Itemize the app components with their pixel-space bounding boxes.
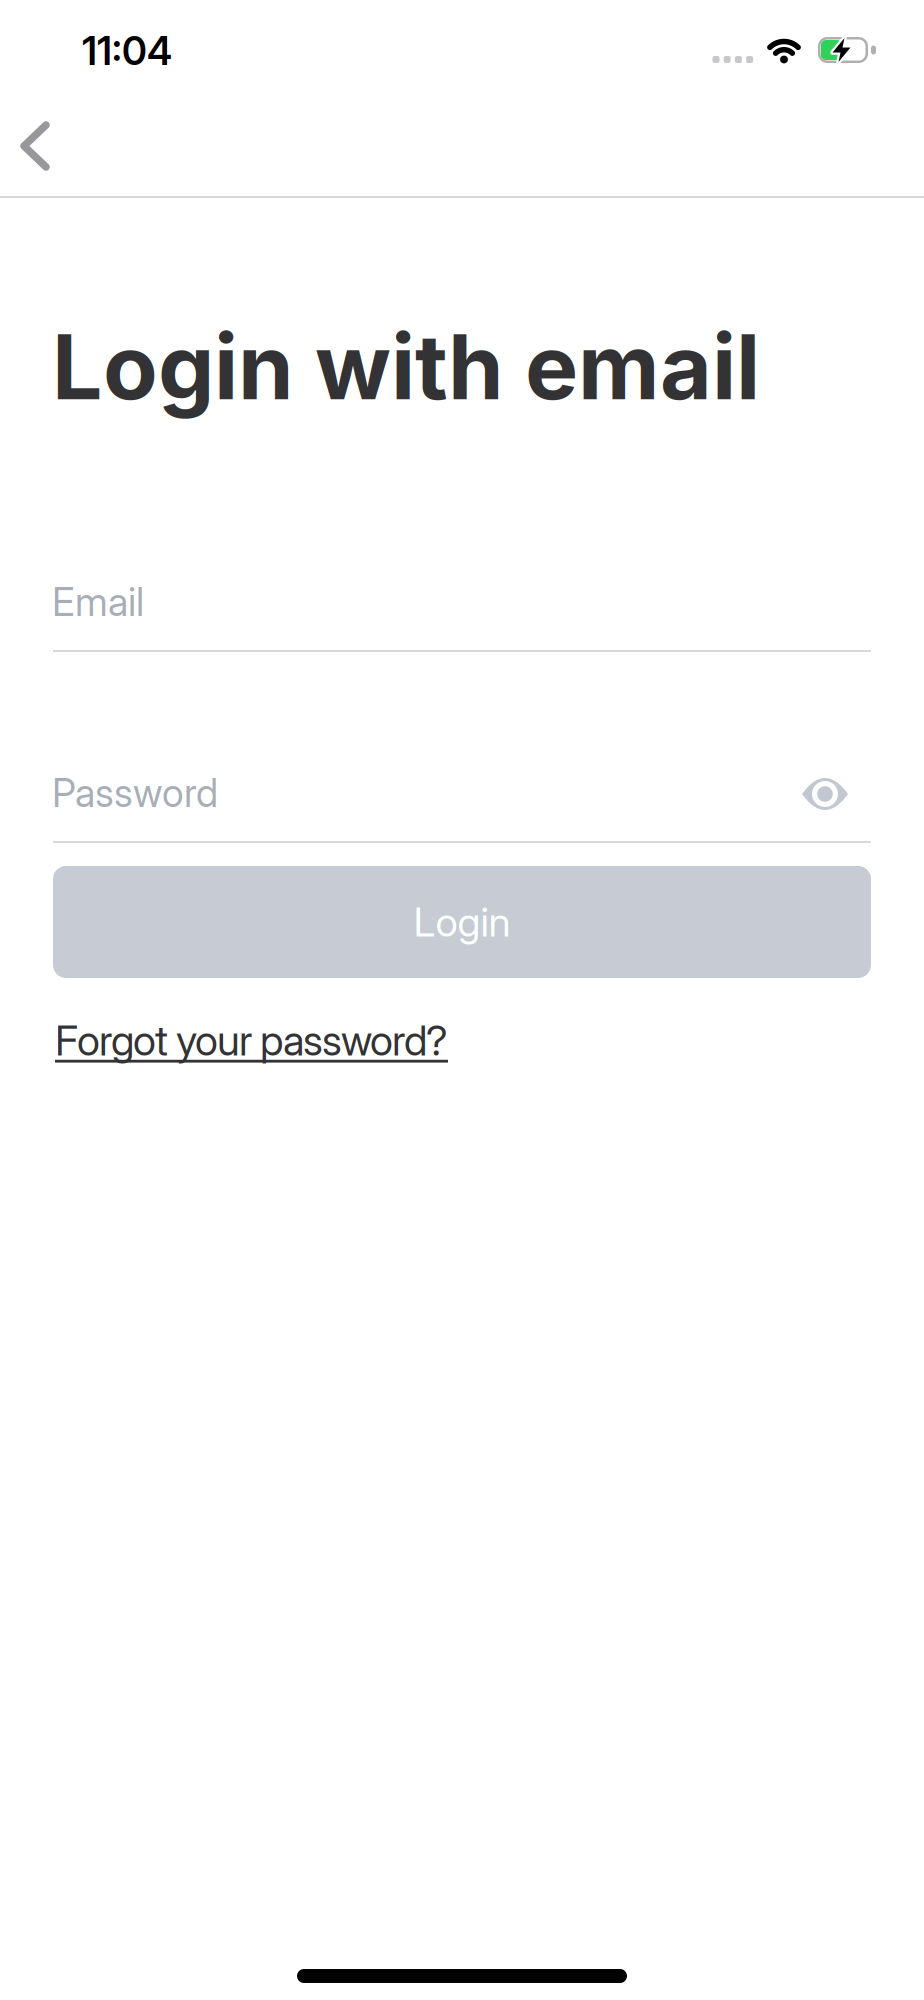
button[interactable]: Forgot your password?: [55, 1016, 448, 1065]
staticText: Password: [52, 770, 218, 816]
staticText: 11:04: [82, 28, 172, 74]
staticText: Forgot your password?: [55, 1016, 448, 1065]
button[interactable]: Back: [0, 102, 90, 192]
button[interactable]: Show password: [795, 770, 855, 818]
button[interactable]: Login: [53, 866, 871, 978]
staticText: Login: [413, 898, 510, 946]
staticText: Login with email: [52, 314, 760, 419]
staticText: Email: [52, 579, 144, 625]
